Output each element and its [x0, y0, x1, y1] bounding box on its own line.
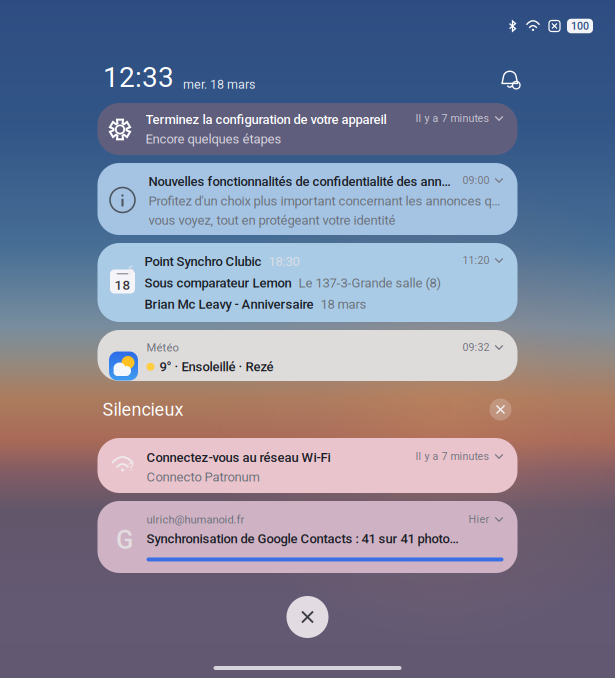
staticText: Synchronisation de Google Contacts : 41 …: [146, 531, 458, 546]
staticText: 18 mars: [320, 297, 366, 312]
staticText: Silencieux: [102, 399, 183, 420]
staticText: 11:20: [462, 254, 489, 266]
staticText: 09:32: [462, 341, 489, 353]
button[interactable]: Terminez la configuration de votre appar…: [97, 103, 517, 155]
button[interactable]: 18: [97, 243, 517, 322]
button[interactable]: ?: [97, 438, 517, 493]
staticText: 6: [128, 264, 134, 276]
staticText: ?: [128, 460, 133, 473]
staticText: ulrich@humanoid.fr: [146, 513, 244, 526]
staticText: 9° · Ensoleillé · Rezé: [159, 359, 273, 374]
staticText: Encore quelques étapes: [145, 131, 281, 147]
button[interactable]: G: [97, 501, 517, 573]
staticText: Nouvelles fonctionnalités de confidentia…: [148, 174, 450, 189]
staticText: 09:00: [462, 174, 489, 186]
staticText: 100: [571, 20, 589, 32]
staticText: Hier: [468, 513, 489, 525]
button[interactable]: Notification settings: [495, 64, 525, 94]
staticText: vous voyez, tout en protégeant votre ide…: [148, 213, 395, 228]
button[interactable]: Dismiss all notifications: [286, 596, 328, 638]
staticText: G: [116, 525, 133, 555]
staticText: Il y a 7 minutes: [415, 112, 489, 124]
staticText: Point Synchro Clubic: [144, 254, 261, 269]
button[interactable]: Météo: [97, 330, 517, 381]
staticText: Terminez la configuration de votre appar…: [145, 112, 386, 127]
button[interactable]: Nouvelles fonctionnalités de confidentia…: [97, 163, 517, 235]
staticText: Il y a 7 minutes: [415, 450, 489, 462]
staticText: 18:30: [268, 254, 299, 269]
staticText: Brian Mc Leavy - Anniversaire: [144, 297, 313, 312]
staticText: Profitez d'un choix plus important conce…: [148, 193, 503, 209]
staticText: Le 137-3-Grande salle (8): [298, 275, 441, 291]
staticText: 18: [114, 277, 130, 293]
button[interactable]: Clear silent notifications: [489, 398, 511, 420]
staticText: Connecto Patronum: [146, 469, 259, 485]
staticText: Météo: [146, 341, 178, 354]
staticText: 12:33: [103, 61, 174, 94]
staticText: Connectez-vous au réseau Wi-Fi: [146, 450, 330, 465]
staticText: Sous comparateur Lemon: [144, 275, 291, 291]
staticText: mer. 18 mars: [183, 77, 255, 92]
